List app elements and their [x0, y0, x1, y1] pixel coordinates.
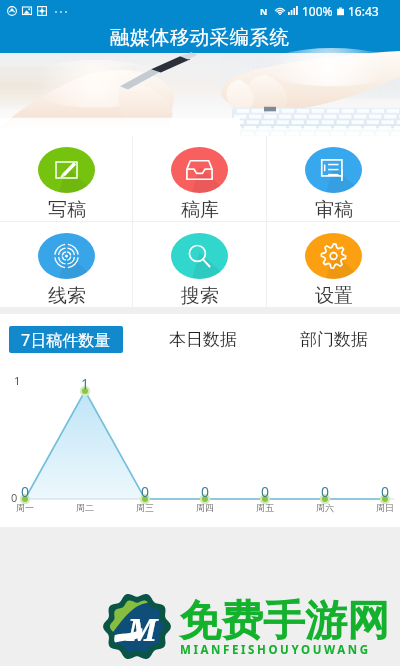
- staticText: 部门数据: [300, 329, 368, 350]
- button[interactable]: 设置: [267, 222, 400, 307]
- staticText: 100%: [302, 3, 333, 19]
- staticText: 周四: [196, 502, 214, 513]
- button[interactable]: 审稿: [267, 136, 400, 221]
- staticText: 周二: [76, 502, 94, 513]
- staticText: 周五: [256, 502, 274, 513]
- staticText: 0: [141, 482, 150, 501]
- staticText: 16:43: [348, 3, 379, 19]
- staticText: 写稿: [48, 198, 86, 221]
- button[interactable]: 搜索: [133, 222, 266, 307]
- staticText: 周一: [16, 502, 34, 513]
- button[interactable]: 线索: [0, 222, 132, 307]
- staticText: M: [127, 608, 157, 650]
- staticText: 1: [81, 374, 90, 393]
- staticText: 线索: [48, 284, 86, 307]
- staticText: 免费手游网: [179, 595, 389, 648]
- staticText: 稿库: [181, 198, 219, 221]
- staticText: 0: [21, 482, 30, 501]
- staticText: N: [260, 5, 268, 17]
- button[interactable]: 本日数据: [163, 326, 243, 353]
- staticText: 0: [261, 482, 270, 501]
- button[interactable]: 稿库: [133, 136, 266, 221]
- staticText: 0: [321, 482, 330, 501]
- staticText: 周日: [376, 502, 394, 513]
- staticText: 0: [201, 482, 210, 501]
- button[interactable]: 7日稿件数量: [9, 326, 123, 353]
- staticText: 0: [381, 482, 390, 501]
- staticText: 7日稿件数量: [21, 329, 111, 351]
- staticText: 0: [11, 490, 18, 505]
- staticText: 本日数据: [169, 329, 237, 350]
- staticText: 审稿: [315, 198, 353, 221]
- button[interactable]: 部门数据: [294, 326, 374, 353]
- staticText: MIANFEISHOUYOUWANG: [180, 642, 371, 658]
- staticText: 融媒体移动采编系统: [110, 25, 290, 50]
- staticText: 周六: [316, 502, 334, 513]
- staticText: 1: [14, 373, 21, 388]
- staticText: 设置: [315, 284, 353, 307]
- staticText: 搜索: [181, 284, 219, 307]
- button[interactable]: 写稿: [0, 136, 132, 221]
- staticText: 周三: [136, 502, 154, 513]
